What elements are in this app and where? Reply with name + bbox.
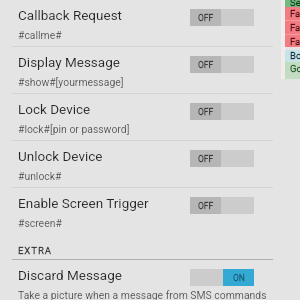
button[interactable]: Good bbox=[285, 62, 300, 79]
staticText: OFF bbox=[198, 201, 214, 211]
staticText: #callme# bbox=[18, 29, 62, 41]
staticText: Lock Device bbox=[18, 101, 91, 117]
staticText: OFF bbox=[198, 13, 214, 23]
staticText: Enable Screen Trigger bbox=[18, 195, 149, 211]
button[interactable]: Switch off bbox=[190, 103, 254, 120]
staticText: Fa bbox=[290, 8, 300, 19]
button[interactable]: Unlock Device bbox=[0, 141, 300, 187]
button[interactable]: Settings bbox=[285, 0, 300, 7]
staticText: OFF bbox=[198, 154, 214, 164]
staticText: #show#[yourmessage] bbox=[18, 76, 124, 88]
staticText: EXTRA bbox=[18, 245, 52, 256]
staticText: Display Message bbox=[18, 54, 120, 70]
button[interactable]: Discard Message bbox=[0, 260, 300, 300]
button[interactable]: Lock Device bbox=[0, 94, 300, 140]
staticText: #screen# bbox=[18, 217, 62, 229]
button[interactable]: Callback Request bbox=[0, 0, 300, 46]
button[interactable]: Failed bbox=[285, 7, 300, 47]
staticText: OFF bbox=[198, 107, 214, 117]
button[interactable]: Switch off bbox=[190, 9, 254, 26]
staticText: Unlock Device bbox=[18, 148, 103, 164]
staticText: OFF bbox=[198, 60, 214, 70]
button[interactable]: Enable Screen Trigger bbox=[0, 188, 300, 234]
button[interactable]: Boot bbox=[285, 50, 300, 62]
staticText: ON bbox=[233, 273, 245, 283]
staticText: Se bbox=[290, 0, 300, 8]
staticText: #unlock# bbox=[18, 170, 62, 182]
staticText: Take a picture when a message from SMS c… bbox=[18, 289, 267, 300]
button[interactable]: Switch off bbox=[190, 197, 254, 214]
staticText: Go bbox=[290, 63, 300, 74]
button[interactable]: Display Message bbox=[0, 47, 300, 93]
staticText: Discard Message bbox=[18, 267, 122, 283]
staticText: #lock#[pin or password] bbox=[18, 123, 130, 135]
staticText: Fa bbox=[290, 22, 300, 33]
button[interactable]: Switch off bbox=[190, 56, 254, 73]
button[interactable]: Switch on bbox=[190, 269, 254, 286]
staticText: Bo bbox=[290, 50, 300, 61]
staticText: Callback Request bbox=[18, 7, 123, 23]
staticText: Fa bbox=[290, 36, 300, 47]
button[interactable]: Switch off bbox=[190, 150, 254, 167]
